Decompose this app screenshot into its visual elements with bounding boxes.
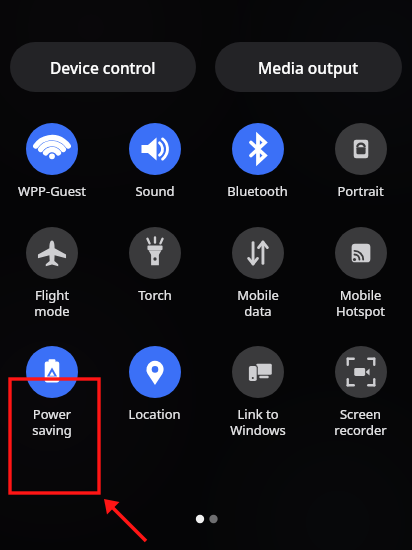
button[interactable]: Device control bbox=[10, 42, 196, 92]
button[interactable]: Sound bbox=[103, 123, 206, 200]
staticText: Media output bbox=[258, 57, 359, 78]
staticText: Bluetooth bbox=[227, 182, 288, 200]
button[interactable]: Portrait bbox=[309, 123, 412, 200]
staticText: Screen recorder bbox=[334, 405, 387, 438]
button[interactable]: Flight mode bbox=[0, 227, 103, 319]
staticText: Torch bbox=[138, 286, 172, 304]
button[interactable]: Location bbox=[103, 346, 206, 423]
button[interactable]: Bluetooth bbox=[206, 123, 309, 200]
button[interactable]: Media output bbox=[215, 42, 402, 92]
staticText: Flight mode bbox=[34, 286, 70, 319]
staticText: Location bbox=[128, 405, 181, 423]
staticText: WPP-Guest bbox=[18, 182, 86, 200]
staticText: Sound bbox=[135, 182, 175, 200]
staticText: Power saving bbox=[32, 405, 72, 438]
staticText: Portrait bbox=[337, 182, 384, 200]
button[interactable]: Screen recorder bbox=[309, 346, 412, 438]
button[interactable]: Torch bbox=[103, 227, 206, 304]
button[interactable]: Link to Windows bbox=[206, 346, 309, 438]
staticText: Device control bbox=[50, 57, 156, 78]
button[interactable]: Mobile Hotspot bbox=[309, 227, 412, 319]
staticText: Link to Windows bbox=[230, 405, 286, 438]
staticText: Mobile data bbox=[237, 286, 279, 319]
button[interactable]: WPP-Guest bbox=[0, 123, 103, 200]
button[interactable]: Power saving bbox=[0, 346, 103, 438]
button[interactable]: Mobile data bbox=[206, 227, 309, 319]
staticText: Mobile Hotspot bbox=[336, 286, 385, 319]
